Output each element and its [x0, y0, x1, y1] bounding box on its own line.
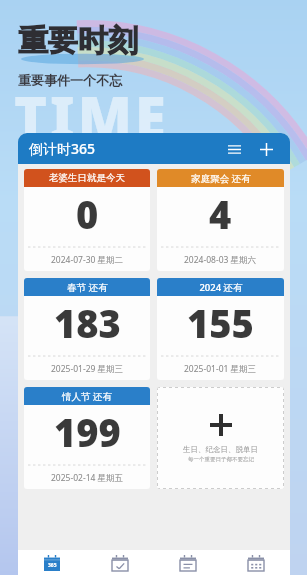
staticText: 2024-08-03 星期六	[184, 254, 257, 266]
staticText: 155	[187, 297, 254, 349]
button[interactable]: Countdown	[18, 550, 86, 575]
button[interactable]: 老婆生日就是今天	[24, 169, 150, 271]
staticText: 情人节 还有	[62, 390, 112, 403]
staticText: 2025-01-01 星期三	[184, 363, 257, 375]
button[interactable]: 春节 还有	[24, 278, 150, 380]
button[interactable]: Add countdown	[157, 387, 284, 489]
staticText: 老婆生日就是今天	[49, 172, 125, 184]
button[interactable]: Add	[253, 136, 279, 162]
button[interactable]: 家庭聚会 还有	[157, 169, 284, 271]
staticText: 0	[76, 188, 99, 240]
staticText: 倒计时365	[29, 139, 96, 158]
staticText: 183	[54, 297, 121, 349]
staticText: 生日、纪念日、脱单日	[183, 445, 258, 454]
staticText: 2024-07-30 星期二	[51, 254, 124, 266]
staticText: 每一个重要日子都不要忘记	[188, 456, 254, 463]
button[interactable]: 情人节 还有	[24, 387, 150, 489]
staticText: 365	[48, 562, 57, 569]
staticText: 4	[209, 188, 232, 240]
staticText: 199	[54, 406, 121, 458]
staticText: 重要时刻	[18, 22, 138, 60]
button[interactable]: Tasks	[86, 550, 154, 575]
button[interactable]: Menu	[221, 136, 247, 162]
staticText: 家庭聚会 还有	[191, 172, 251, 185]
staticText: 2024 还有	[199, 281, 243, 294]
button[interactable]: 2024 还有	[157, 278, 284, 380]
staticText: 2025-01-29 星期三	[51, 363, 124, 375]
staticText: 重要事件一个不忘	[18, 72, 122, 88]
staticText: TIME	[14, 78, 169, 154]
staticText: 2025-02-14 星期五	[51, 472, 124, 484]
staticText: 春节 还有	[67, 281, 108, 294]
button[interactable]: Calendar	[222, 550, 290, 575]
button[interactable]: Notes	[154, 550, 222, 575]
